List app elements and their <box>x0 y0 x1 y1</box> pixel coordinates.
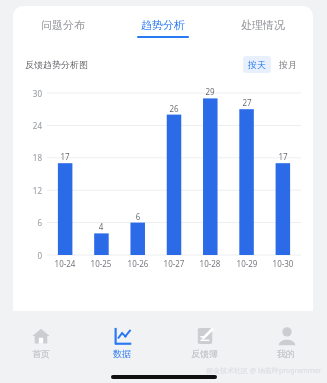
staticText: 6 <box>128 211 148 222</box>
staticText: 10-29 <box>231 258 263 269</box>
staticText: 29 <box>200 86 220 97</box>
staticText: 10-30 <box>267 258 299 269</box>
button[interactable]: 按月 <box>274 56 302 73</box>
staticText: 首页 <box>32 348 50 359</box>
button[interactable]: 趋势分析 <box>113 6 213 50</box>
staticText: 问题分布 <box>41 18 85 32</box>
staticText: 掘金技术社区 @ 纳兹呼programmer <box>206 366 322 376</box>
button[interactable]: 反馈簿 <box>163 318 245 366</box>
staticText: 10-27 <box>158 258 190 269</box>
staticText: 18 <box>21 152 42 163</box>
button[interactable]: 处理情况 <box>213 6 313 50</box>
staticText: 反馈趋势分析图 <box>25 59 88 70</box>
button[interactable]: 数据 <box>81 318 163 366</box>
staticText: 按月 <box>279 59 297 70</box>
staticText: 30 <box>21 88 42 99</box>
staticText: 我的 <box>277 348 295 359</box>
button[interactable]: 首页 <box>0 318 81 366</box>
staticText: 27 <box>237 97 257 108</box>
staticText: 反馈簿 <box>191 348 218 359</box>
staticText: 17 <box>273 151 293 162</box>
staticText: 10-26 <box>122 258 154 269</box>
staticText: 按天 <box>248 59 266 70</box>
button[interactable]: 按天 <box>243 56 271 73</box>
staticText: 10-25 <box>85 258 117 269</box>
staticText: 4 <box>91 221 111 232</box>
staticText: 10-28 <box>194 258 226 269</box>
staticText: 26 <box>164 103 184 114</box>
staticText: 24 <box>21 120 42 131</box>
staticText: 17 <box>55 151 75 162</box>
staticText: 12 <box>21 185 42 196</box>
staticText: 6 <box>21 217 42 228</box>
staticText: 0 <box>21 250 42 261</box>
staticText: 趋势分析 <box>141 18 185 32</box>
button[interactable]: 问题分布 <box>13 6 113 50</box>
staticText: 处理情况 <box>241 18 285 32</box>
staticText: 10-24 <box>49 258 81 269</box>
staticText: 数据 <box>113 348 131 359</box>
button[interactable]: 我的 <box>245 318 327 366</box>
